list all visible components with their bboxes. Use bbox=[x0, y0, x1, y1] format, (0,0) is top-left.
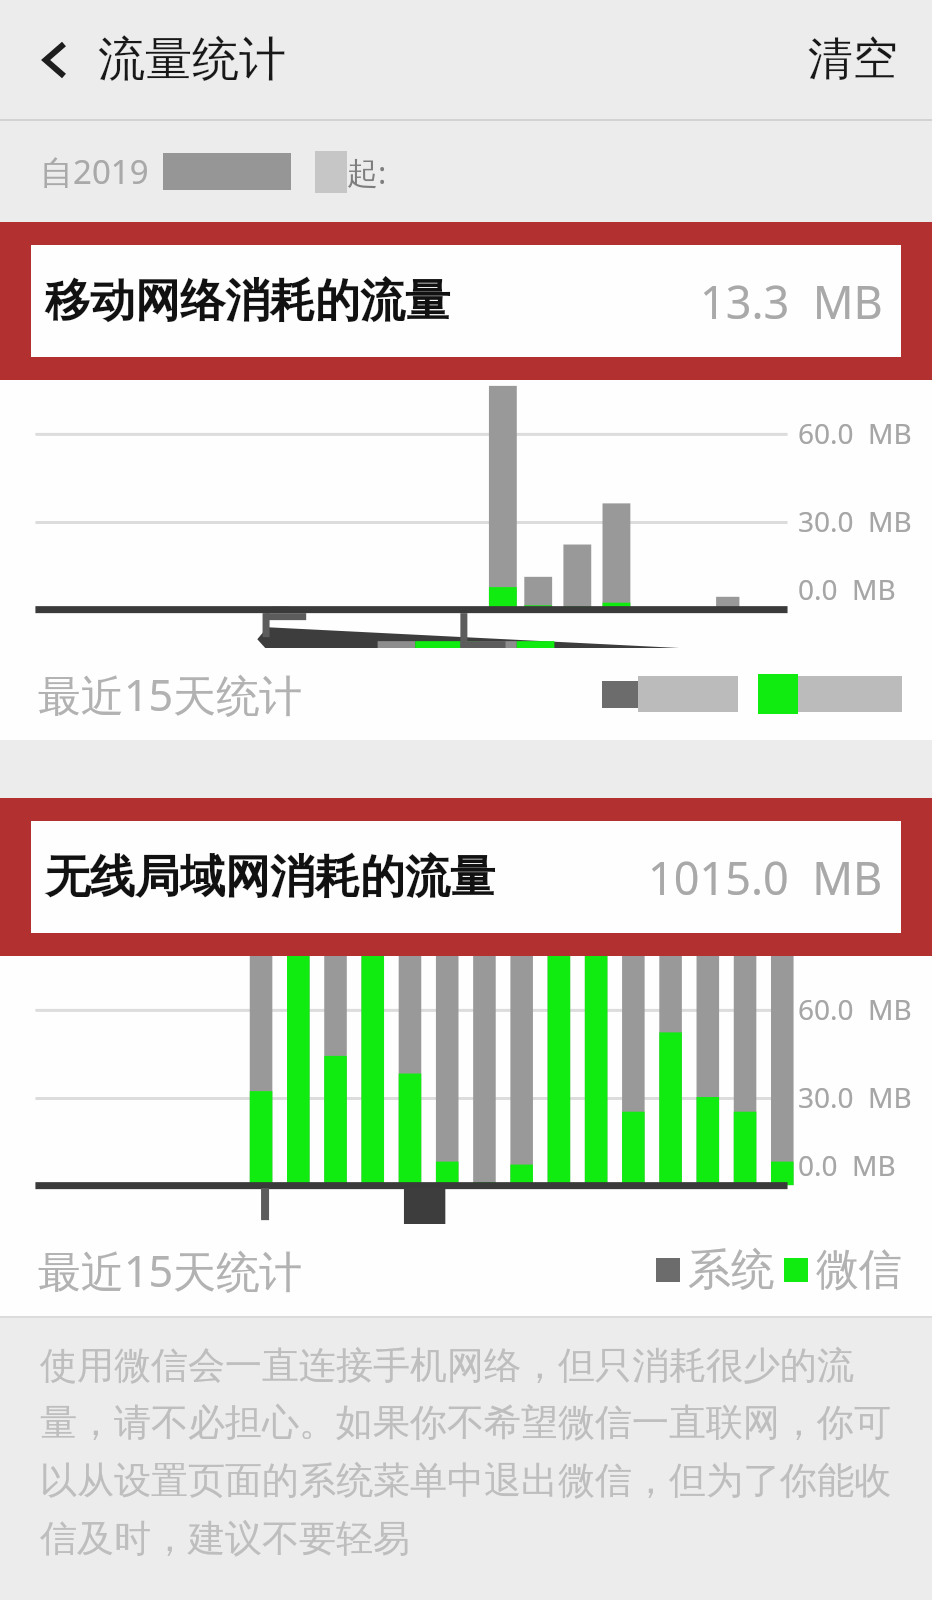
staticText: 流量统计 bbox=[98, 30, 286, 89]
button[interactable]: Back bbox=[24, 28, 88, 92]
staticText: 最近15天统计 bbox=[38, 1241, 303, 1300]
staticText: 30.0 MB bbox=[798, 502, 912, 540]
staticText: 60.0 MB bbox=[798, 990, 912, 1028]
staticText: 使用微信会一直连接手机网络，但只消耗很少的流量，请不必担心。如果你不希望微信一直… bbox=[40, 1342, 896, 1562]
button[interactable]: 清空 bbox=[796, 17, 910, 102]
staticText: 系统 bbox=[688, 1243, 774, 1297]
staticText: 0.0 MB bbox=[798, 570, 896, 608]
staticText: 自2019 bbox=[40, 149, 149, 194]
staticText: 起: bbox=[347, 151, 387, 193]
staticText: 60.0 MB bbox=[798, 414, 912, 452]
staticText: 移动网络消耗的流量 bbox=[45, 273, 450, 330]
staticText: 清空 bbox=[808, 31, 898, 88]
staticText: 微信 bbox=[816, 1243, 902, 1297]
staticText: 0.0 MB bbox=[798, 1146, 896, 1184]
button[interactable]: 移动网络消耗的流量 bbox=[0, 222, 932, 380]
staticText: 13.3 MB bbox=[700, 271, 883, 332]
staticText: 30.0 MB bbox=[798, 1078, 912, 1116]
button[interactable]: 无线局域网消耗的流量 bbox=[0, 798, 932, 956]
staticText: 1015.0 MB bbox=[648, 847, 883, 908]
staticText: 最近15天统计 bbox=[38, 665, 303, 724]
staticText: 无线局域网消耗的流量 bbox=[45, 849, 495, 906]
